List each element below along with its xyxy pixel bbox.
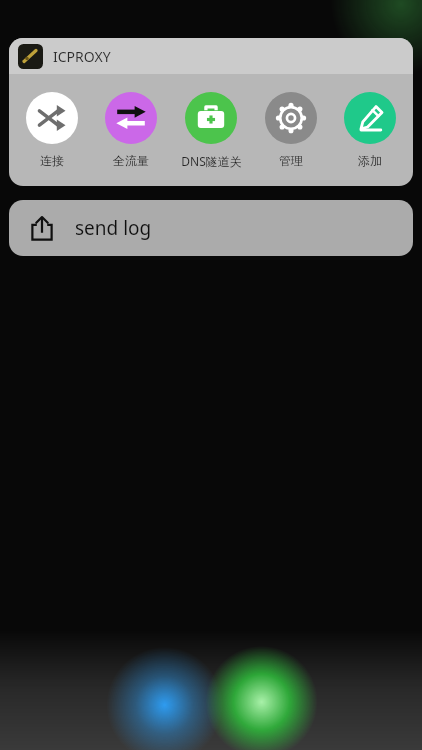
button[interactable]: Add bbox=[333, 90, 407, 170]
button[interactable]: Connect bbox=[15, 90, 89, 170]
button[interactable]: ICPROXY bbox=[9, 38, 413, 74]
staticText: 连接 bbox=[40, 153, 64, 168]
staticText: ICPROXY bbox=[53, 47, 111, 66]
button[interactable]: All traffic bbox=[94, 90, 168, 170]
staticText: 全流量 bbox=[113, 153, 149, 168]
button[interactable]: Manage bbox=[254, 90, 328, 170]
staticText: DNS隧道关 bbox=[181, 153, 242, 169]
button[interactable]: DNS tunnel bbox=[174, 90, 248, 171]
staticText: send log bbox=[75, 215, 152, 241]
staticText: 管理 bbox=[279, 153, 303, 168]
staticText: 添加 bbox=[358, 153, 382, 168]
button[interactable]: send log bbox=[9, 200, 413, 256]
